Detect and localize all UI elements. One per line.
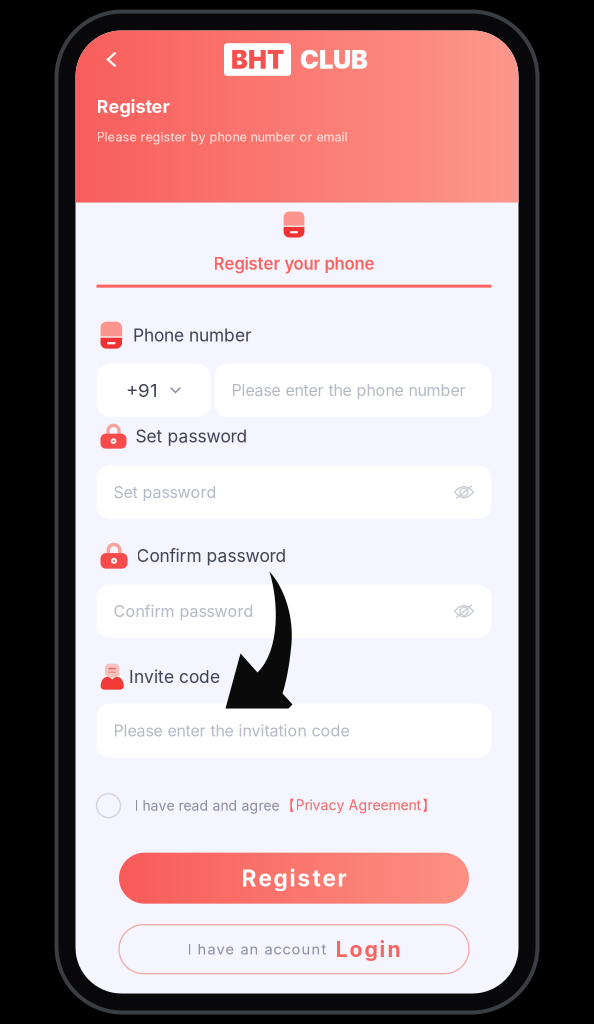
staticText: Please enter the phone number <box>231 380 465 400</box>
staticText: I h a v e a n a c c o u n t <box>187 940 326 958</box>
staticText: R e g i s t e r <box>241 864 346 892</box>
staticText: BHT <box>231 44 284 75</box>
staticText: CLUB <box>300 44 368 75</box>
staticText: Please enter the invitation code <box>113 721 349 740</box>
staticText: Invite code <box>129 666 220 687</box>
button[interactable]: I have read and agree <box>96 794 491 818</box>
staticText: 【Privacy Agreement】 <box>281 797 435 814</box>
button[interactable]: I h a v e a n a c c o u n t <box>119 925 469 974</box>
staticText: +91 <box>126 379 158 401</box>
staticText: Set password <box>135 426 247 447</box>
staticText: Phone number <box>133 325 252 346</box>
staticText: Confirm password <box>136 545 286 566</box>
staticText: I have read and agree <box>134 797 279 814</box>
staticText: Confirm password <box>113 601 253 621</box>
button[interactable]: Back <box>96 44 126 74</box>
staticText: L o g i n <box>335 936 400 962</box>
button[interactable]: Show confirm password <box>453 602 474 620</box>
button[interactable]: R e g i s t e r <box>119 853 469 904</box>
button[interactable]: Show password <box>453 483 474 501</box>
staticText: Set password <box>113 482 216 502</box>
staticText: Register your phone <box>213 253 374 274</box>
staticText: Please register by phone number or email <box>96 129 347 145</box>
button[interactable]: +91 <box>96 364 210 417</box>
staticText: Register <box>96 95 169 117</box>
